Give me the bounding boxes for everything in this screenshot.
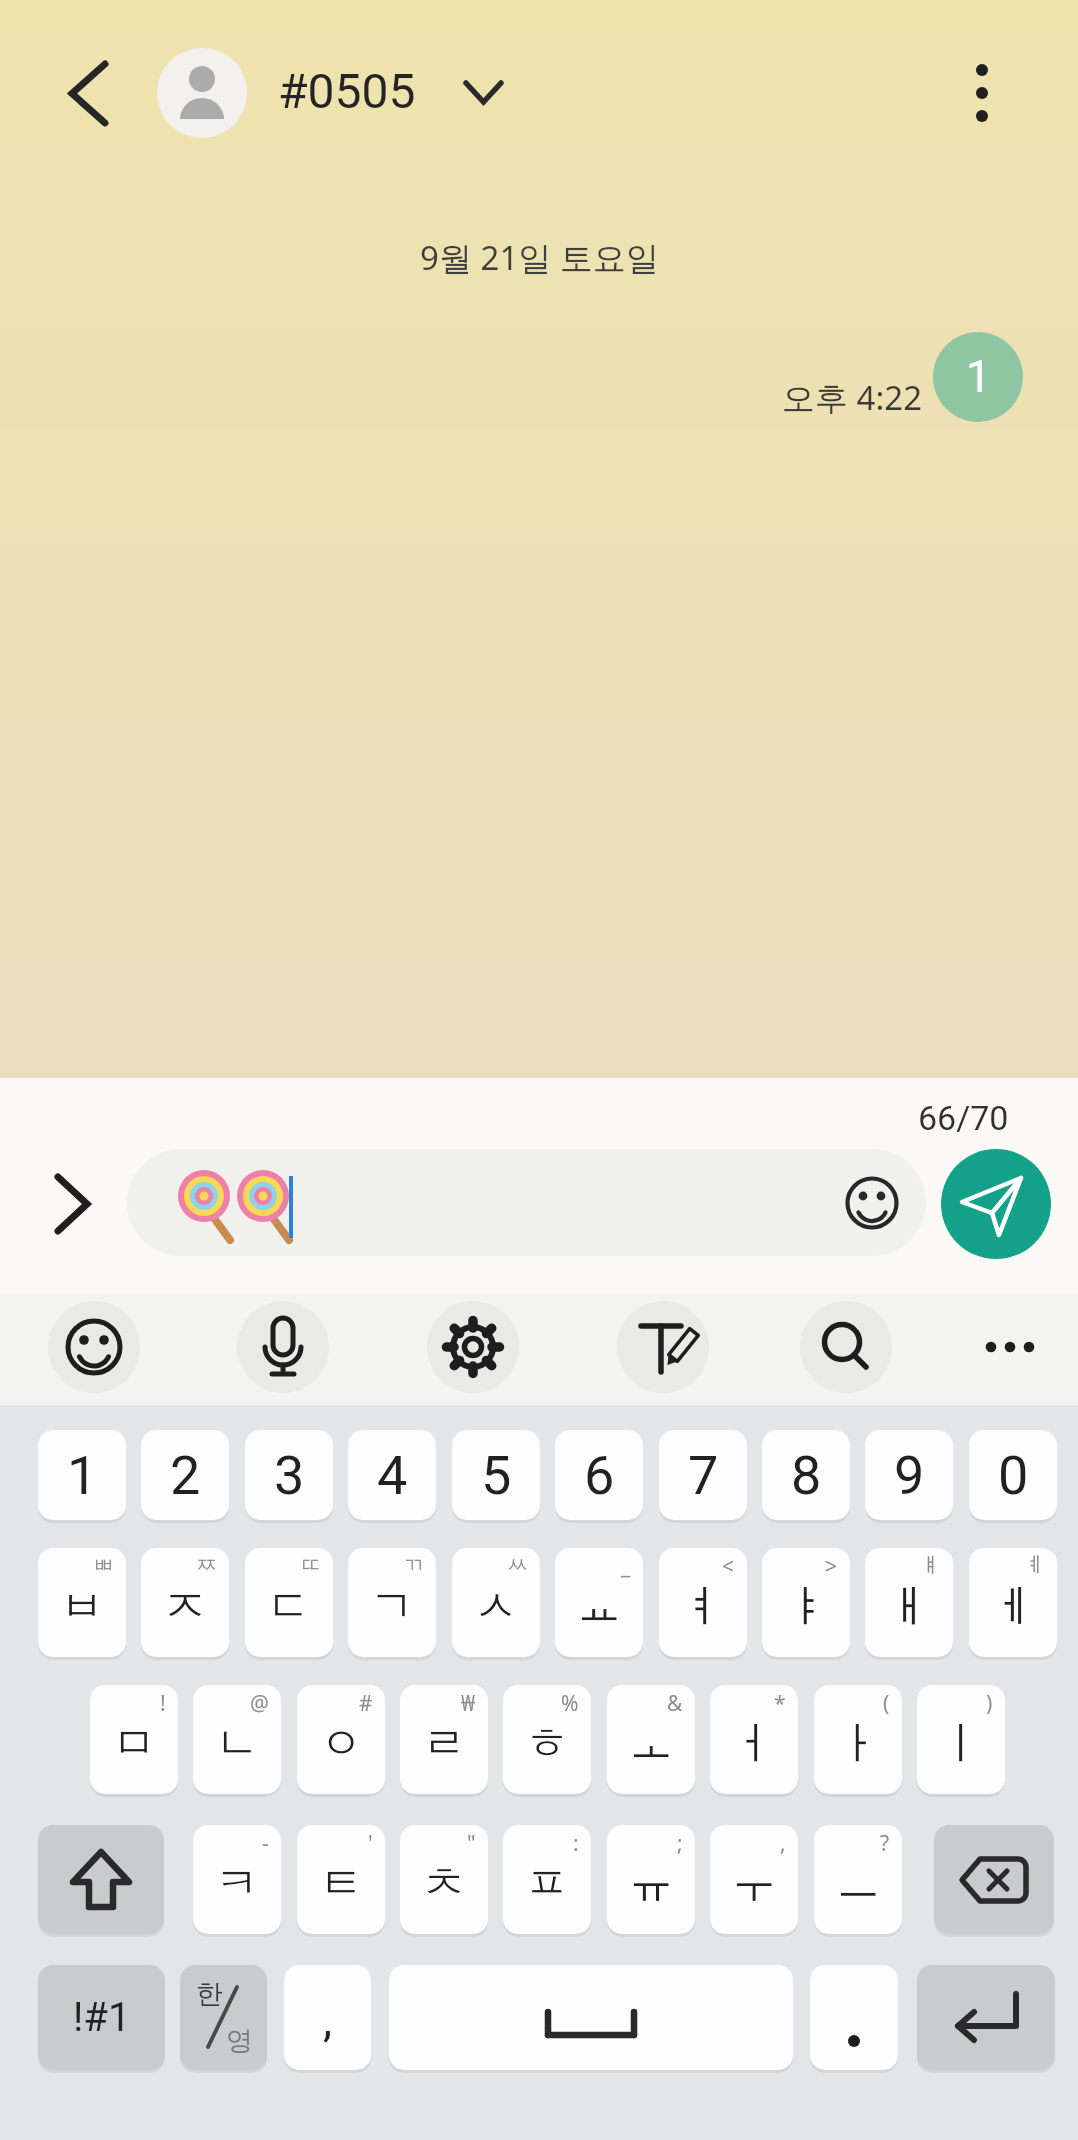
button[interactable]: ㅇ — [297, 1685, 385, 1794]
button[interactable]: ㅎ — [503, 1685, 591, 1794]
button[interactable] — [48, 1301, 140, 1393]
staticText: 9월 21일 토요일 — [420, 235, 659, 280]
button[interactable]: 1 — [38, 1430, 126, 1520]
button[interactable]: ㅍ — [503, 1825, 591, 1934]
staticText: ㅖ — [1024, 1552, 1045, 1578]
staticText: # — [359, 1689, 373, 1718]
button[interactable] — [934, 1825, 1054, 1934]
button[interactable]: 8 — [762, 1430, 850, 1520]
staticText: 영 — [226, 2024, 253, 2058]
staticText: 1 — [67, 1444, 98, 1507]
staticText: ㅏ — [836, 1716, 880, 1771]
button[interactable]: ㅑ — [762, 1548, 850, 1657]
button[interactable] — [38, 1825, 164, 1934]
button[interactable]: 3 — [245, 1430, 333, 1520]
button[interactable]: 4 — [348, 1430, 436, 1520]
staticText: 66/70 — [918, 1098, 1009, 1138]
staticText: 5 — [481, 1444, 512, 1507]
staticText: ㅁ — [112, 1716, 156, 1771]
button[interactable] — [157, 48, 247, 138]
button[interactable]: 0 — [969, 1430, 1057, 1520]
staticText: ㅐ — [887, 1579, 931, 1634]
staticText: ㅑ — [784, 1579, 828, 1634]
button[interactable] — [64, 60, 116, 128]
staticText: 오후 4:22 — [782, 375, 923, 420]
button[interactable]: ㅅ — [452, 1548, 540, 1657]
staticText: ㅗ — [629, 1716, 673, 1771]
button[interactable]: 6 — [555, 1430, 643, 1520]
button[interactable]: 1 — [933, 332, 1023, 422]
button[interactable]: 2 — [141, 1430, 229, 1520]
staticText: ㅅ — [474, 1579, 518, 1634]
button[interactable]: !#1 — [38, 1965, 165, 2070]
button[interactable] — [127, 1149, 926, 1256]
button[interactable] — [941, 1149, 1051, 1259]
button[interactable]: ㅣ — [917, 1685, 1005, 1794]
button[interactable]: ㅏ — [814, 1685, 902, 1794]
button[interactable]: 7 — [659, 1430, 747, 1520]
staticText: * — [774, 1689, 786, 1718]
staticText: ㅈ — [163, 1579, 207, 1634]
staticText: ㅠ — [629, 1856, 673, 1911]
button[interactable]: 5 — [452, 1430, 540, 1520]
button[interactable]: 9 — [865, 1430, 953, 1520]
button[interactable]: ㄷ — [245, 1548, 333, 1657]
staticText: ㅕ — [681, 1579, 725, 1634]
staticText: < — [722, 1552, 735, 1581]
staticText: ㄴ — [215, 1716, 259, 1771]
button[interactable]: ㅠ — [607, 1825, 695, 1934]
button[interactable] — [844, 1175, 900, 1231]
staticText: ; — [677, 1829, 683, 1858]
button[interactable] — [427, 1301, 519, 1393]
button[interactable]: ㅓ — [710, 1685, 798, 1794]
staticText: 2 — [170, 1444, 201, 1507]
button[interactable] — [237, 1301, 329, 1393]
button[interactable]: ㅁ — [90, 1685, 178, 1794]
staticText: 9 — [894, 1444, 925, 1507]
staticText: 한 — [196, 1977, 223, 2011]
staticText: , — [323, 1993, 333, 2047]
staticText: _ — [621, 1552, 631, 1581]
button[interactable]: ㅡ — [814, 1825, 902, 1934]
button[interactable]: ㅕ — [659, 1548, 747, 1657]
button[interactable] — [617, 1301, 709, 1393]
staticText: !#1 — [73, 1994, 131, 2041]
staticText: ㅉ — [196, 1552, 217, 1578]
staticText: 8 — [791, 1444, 822, 1507]
button[interactable]: ㅂ — [38, 1548, 126, 1657]
button[interactable] — [810, 1965, 898, 2070]
button[interactable] — [917, 1965, 1055, 2070]
button[interactable]: ㄴ — [193, 1685, 281, 1794]
staticText: ㄸ — [300, 1552, 321, 1578]
button[interactable] — [800, 1301, 892, 1393]
button[interactable]: ㅐ — [865, 1548, 953, 1657]
button[interactable]: ㅛ — [555, 1548, 643, 1657]
button[interactable]: ㄱ — [348, 1548, 436, 1657]
button[interactable]: ㅌ — [297, 1825, 385, 1934]
button[interactable]: ㅋ — [193, 1825, 281, 1934]
button[interactable] — [389, 1965, 793, 2070]
button[interactable]: ㅗ — [607, 1685, 695, 1794]
button[interactable]: ㅈ — [141, 1548, 229, 1657]
button[interactable] — [975, 1325, 1045, 1369]
button[interactable]: 한 — [180, 1965, 267, 2070]
staticText: 4 — [377, 1444, 408, 1507]
staticText: ㅃ — [93, 1552, 114, 1578]
staticText: @ — [250, 1689, 269, 1718]
button[interactable] — [960, 58, 1004, 128]
button[interactable]: ㅔ — [969, 1548, 1057, 1657]
button[interactable] — [48, 1170, 98, 1238]
staticText: ㅇ — [319, 1716, 363, 1771]
staticText: 6 — [584, 1444, 615, 1507]
staticText: > — [825, 1552, 838, 1581]
staticText: ㅍ — [525, 1856, 569, 1911]
staticText: 0 — [998, 1444, 1029, 1507]
button[interactable]: ㅊ — [400, 1825, 488, 1934]
staticText: ㅋ — [215, 1856, 259, 1911]
staticText: ㅓ — [732, 1716, 776, 1771]
button[interactable]: ㄹ — [400, 1685, 488, 1794]
staticText: 1 — [966, 351, 991, 403]
button[interactable]: ㅜ — [710, 1825, 798, 1934]
button[interactable]: , — [284, 1965, 371, 2070]
staticText: ㅎ — [525, 1716, 569, 1771]
